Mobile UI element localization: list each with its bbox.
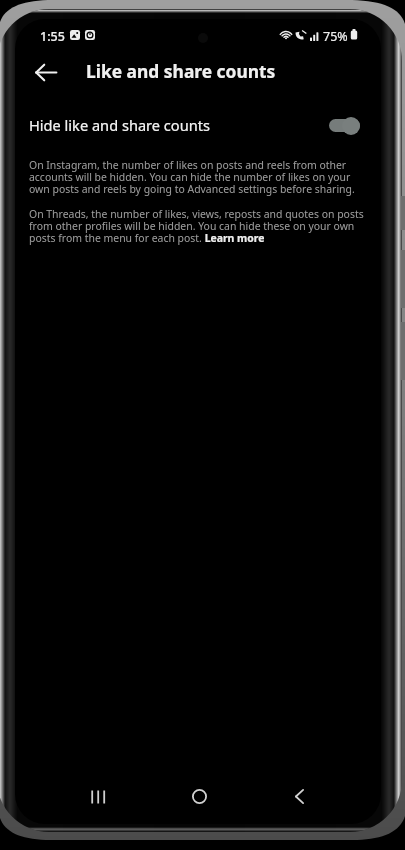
staticText: 1:55	[40, 28, 65, 42]
button[interactable]: Hide like and share counts	[15, 105, 381, 145]
button[interactable]: Recent apps	[64, 772, 132, 821]
button[interactable]: Back	[27, 54, 64, 91]
staticText: Like and share counts	[86, 59, 276, 83]
staticText: On Instagram, the number of likes on pos…	[29, 159, 367, 195]
button[interactable]: Back	[265, 772, 333, 821]
button[interactable]: Home	[165, 772, 233, 821]
staticText: Hide like and share counts	[29, 115, 210, 135]
staticText: 75%	[323, 28, 348, 42]
staticText: On Threads, the number of likes, views, …	[29, 208, 367, 244]
